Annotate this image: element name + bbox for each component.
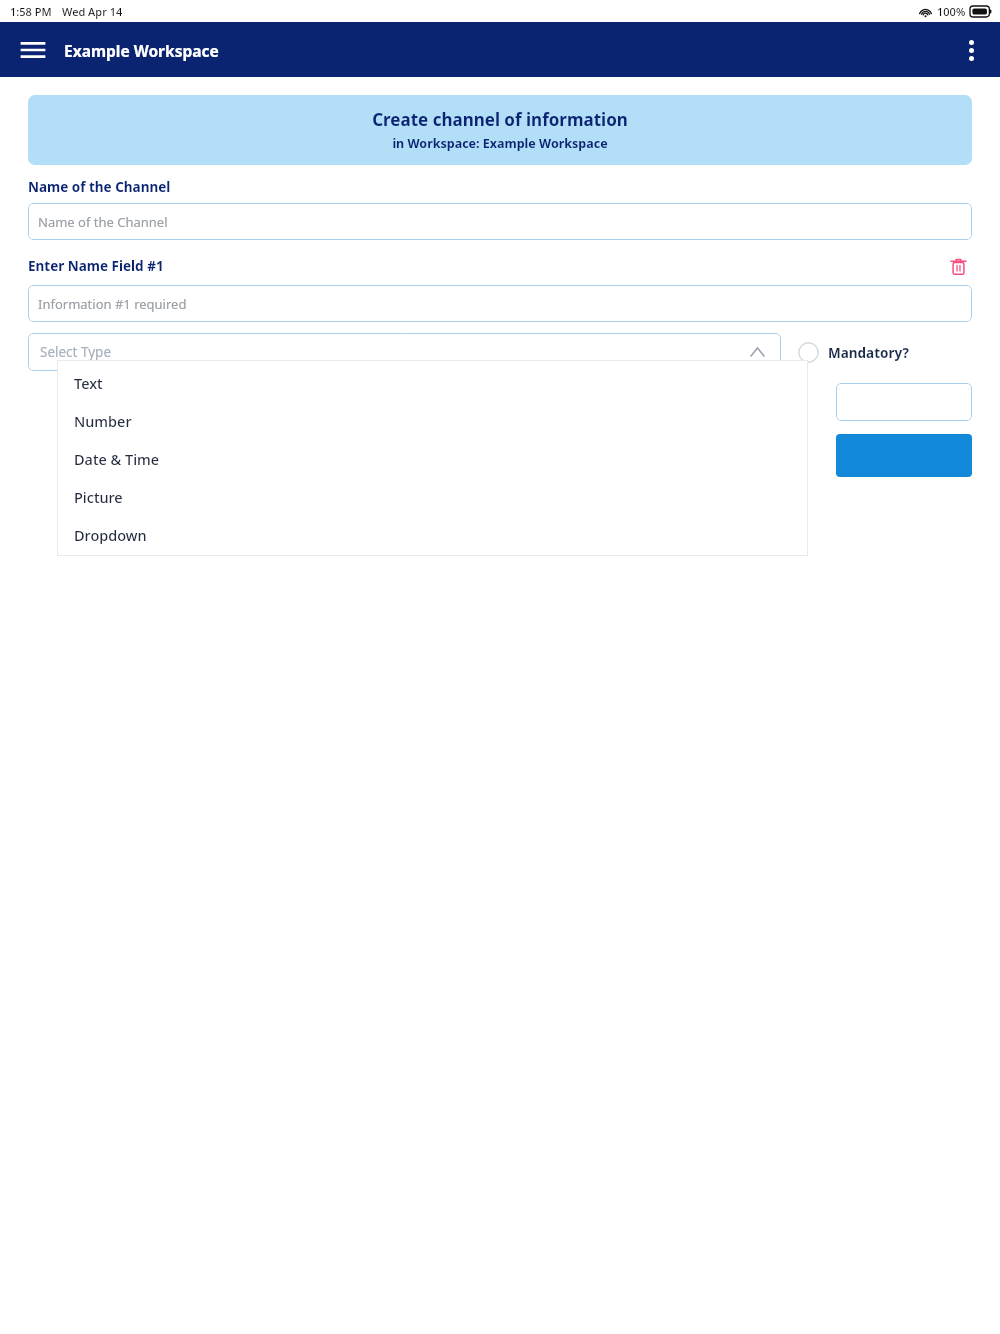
staticText: Mandatory? xyxy=(828,344,909,362)
staticText: Enter Name Field #1 xyxy=(28,257,164,275)
button[interactable]: Text xyxy=(57,364,808,402)
staticText: in Workspace: Example Workspace xyxy=(392,135,608,152)
button[interactable]: Date & Time xyxy=(57,440,808,478)
staticText: Wed Apr 14 xyxy=(62,4,123,19)
button[interactable]: Open navigation menu xyxy=(10,27,56,73)
button[interactable]: Delete field xyxy=(944,252,972,280)
staticText: Number xyxy=(74,411,132,431)
button[interactable] xyxy=(836,383,972,421)
staticText: Name of the Channel xyxy=(38,213,168,231)
staticText: Create channel of information xyxy=(372,108,628,131)
button[interactable]: Information #1 required xyxy=(28,285,972,322)
button[interactable]: More options xyxy=(948,27,994,73)
staticText: 1:58 PM xyxy=(10,4,52,19)
staticText: Dropdown xyxy=(74,525,147,545)
button[interactable]: Create channel of information xyxy=(28,95,972,165)
button[interactable]: Picture xyxy=(57,478,808,516)
button[interactable]: Name of the Channel xyxy=(28,203,972,240)
button[interactable] xyxy=(836,434,972,477)
staticText: Picture xyxy=(74,487,123,507)
staticText: Information #1 required xyxy=(38,295,187,313)
staticText: Name of the Channel xyxy=(28,178,171,196)
staticText: Example Workspace xyxy=(64,40,219,61)
button[interactable]: Mandatory? xyxy=(798,342,909,363)
button[interactable]: Select Type xyxy=(28,333,781,371)
staticText: Select Type xyxy=(40,343,112,361)
staticText: Date & Time xyxy=(74,449,160,469)
staticText: Text xyxy=(74,373,103,393)
button[interactable]: Dropdown xyxy=(57,516,808,554)
staticText: 100% xyxy=(937,4,966,19)
button[interactable]: Number xyxy=(57,402,808,440)
